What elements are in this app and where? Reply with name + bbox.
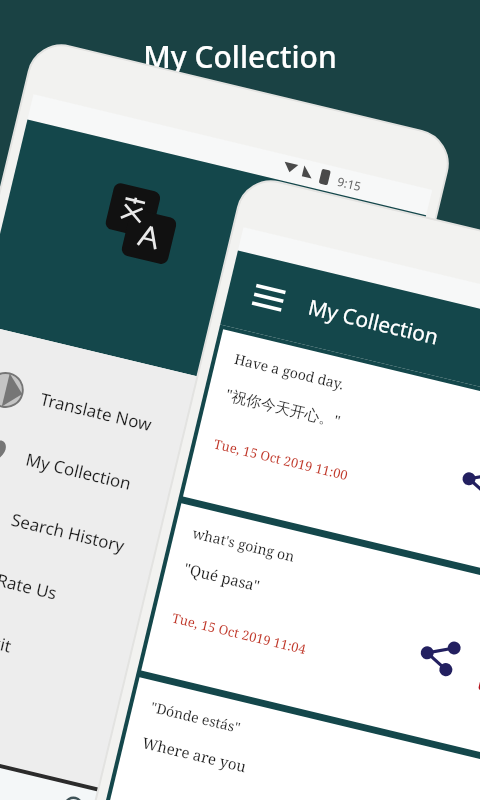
button[interactable]: Open navigation drawer [0, 0, 480, 800]
